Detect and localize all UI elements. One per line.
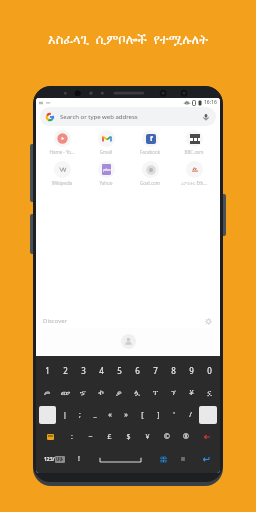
button[interactable]: 8 (164, 360, 182, 380)
button[interactable]: Home - Yo… (41, 129, 83, 156)
button[interactable]: Gmail (85, 129, 127, 156)
staticText: ፐ (153, 389, 158, 396)
button[interactable]: 7 (146, 360, 164, 380)
staticText: » (124, 410, 128, 420)
staticText: : (71, 432, 73, 442)
button[interactable]: ፐ (146, 382, 164, 402)
staticText: Goal.com (129, 180, 171, 186)
button[interactable]: Undo (195, 427, 218, 447)
staticText: 2 (63, 365, 68, 376)
staticText: ቇ (116, 389, 122, 396)
button[interactable]: : (62, 427, 81, 447)
staticText: BBC.com (173, 149, 215, 155)
button[interactable]: BBC.com (173, 129, 215, 156)
button[interactable]: 5 (110, 360, 128, 380)
staticText: 7 (153, 365, 158, 376)
button[interactable]: ' (166, 405, 182, 425)
staticText: ሀሁ (56, 456, 64, 463)
button[interactable]: Discover settings (203, 316, 213, 326)
staticText: ኯ (98, 389, 104, 396)
button[interactable]: ¥ (138, 427, 157, 447)
staticText: | (63, 410, 67, 420)
staticText: Wikipedia (41, 180, 83, 186)
staticText: Facebook (129, 149, 171, 155)
staticText: 4 (99, 365, 104, 376)
button[interactable]: f (129, 129, 171, 156)
button[interactable]: _ (87, 405, 102, 425)
staticText: አስፈላጊ ሲምቦሎች የተሟሉለት (0, 30, 256, 48)
button[interactable]: | (57, 405, 72, 425)
button[interactable]: 3 (74, 360, 92, 380)
staticText: ] (157, 410, 160, 420)
staticText: / (189, 410, 192, 420)
button[interactable]: ® (176, 427, 195, 447)
button[interactable]: Change language (153, 449, 173, 469)
button[interactable]: Search or type web address (40, 107, 216, 126)
button[interactable]: 1 (38, 360, 56, 380)
staticText: 8 (171, 365, 176, 376)
button[interactable]: Shift (39, 406, 56, 424)
button[interactable]: ሏ (128, 382, 146, 402)
staticText: ጬ (61, 389, 70, 396)
button[interactable]: Switch to letters (38, 449, 70, 469)
staticText: Search or type web address (60, 113, 138, 121)
button[interactable]: ሪፖርተር Eth… (173, 160, 215, 187)
button[interactable]: ኯ (92, 382, 110, 402)
button[interactable]: More options (173, 449, 193, 469)
button[interactable]: ኇ (74, 382, 92, 402)
button[interactable]: ቇ (110, 382, 128, 402)
staticText: 16:16 (204, 99, 217, 106)
button[interactable]: 0 (200, 360, 218, 380)
button[interactable]: 4 (92, 360, 110, 380)
staticText: f (150, 134, 153, 144)
staticText: ¥ (145, 432, 150, 442)
staticText: 3 (81, 365, 86, 376)
staticText: 9 (189, 365, 194, 376)
button[interactable]: [ (134, 405, 150, 425)
button[interactable]: ! (70, 449, 87, 469)
button[interactable]: £ (100, 427, 119, 447)
button[interactable]: 9 (182, 360, 200, 380)
button[interactable]: Enter (193, 449, 218, 469)
staticText: 0 (207, 365, 212, 376)
button[interactable]: » (118, 405, 134, 425)
button[interactable]: Emoji (38, 427, 62, 447)
button[interactable]: $ (119, 427, 138, 447)
button[interactable]: « (102, 405, 118, 425)
button[interactable]: ጦ (38, 382, 56, 402)
staticText: ሏ (134, 389, 140, 396)
staticText: 6 (135, 365, 140, 376)
staticText: ' (173, 410, 175, 420)
staticText: ~ (88, 432, 93, 442)
staticText: Gmail (85, 149, 127, 155)
button[interactable]: ; (72, 405, 87, 425)
button[interactable]: 6 (128, 360, 146, 380)
staticText: 1 (45, 365, 50, 376)
button[interactable]: ኗ (200, 382, 218, 402)
button[interactable]: 2 (56, 360, 74, 380)
button[interactable]: ጬ (56, 382, 74, 402)
staticText: 123/ (44, 456, 55, 463)
button[interactable]: / (182, 405, 198, 425)
button[interactable]: Voice search (201, 112, 211, 122)
button[interactable]: ~ (81, 427, 100, 447)
button[interactable]: ] (150, 405, 166, 425)
button[interactable]: Backspace (199, 406, 217, 424)
staticText: ጦ (44, 389, 50, 396)
button[interactable]: ኘ (164, 382, 182, 402)
staticText: ! (78, 454, 80, 464)
staticText: yahoo (103, 168, 111, 172)
staticText: ኇ (80, 389, 86, 396)
button[interactable]: Space (87, 449, 153, 469)
button[interactable]: Goal.com (129, 160, 171, 187)
staticText: Discover (43, 317, 68, 325)
button[interactable]: ቖ (182, 382, 200, 402)
staticText: _ (93, 410, 97, 420)
staticText: $ (126, 432, 131, 442)
staticText: Yahoo (85, 180, 127, 186)
button[interactable] (41, 328, 215, 354)
button[interactable]: Wikipedia (41, 160, 83, 187)
button[interactable]: © (157, 427, 176, 447)
staticText: © (164, 432, 170, 442)
button[interactable]: yahoo (85, 160, 127, 187)
